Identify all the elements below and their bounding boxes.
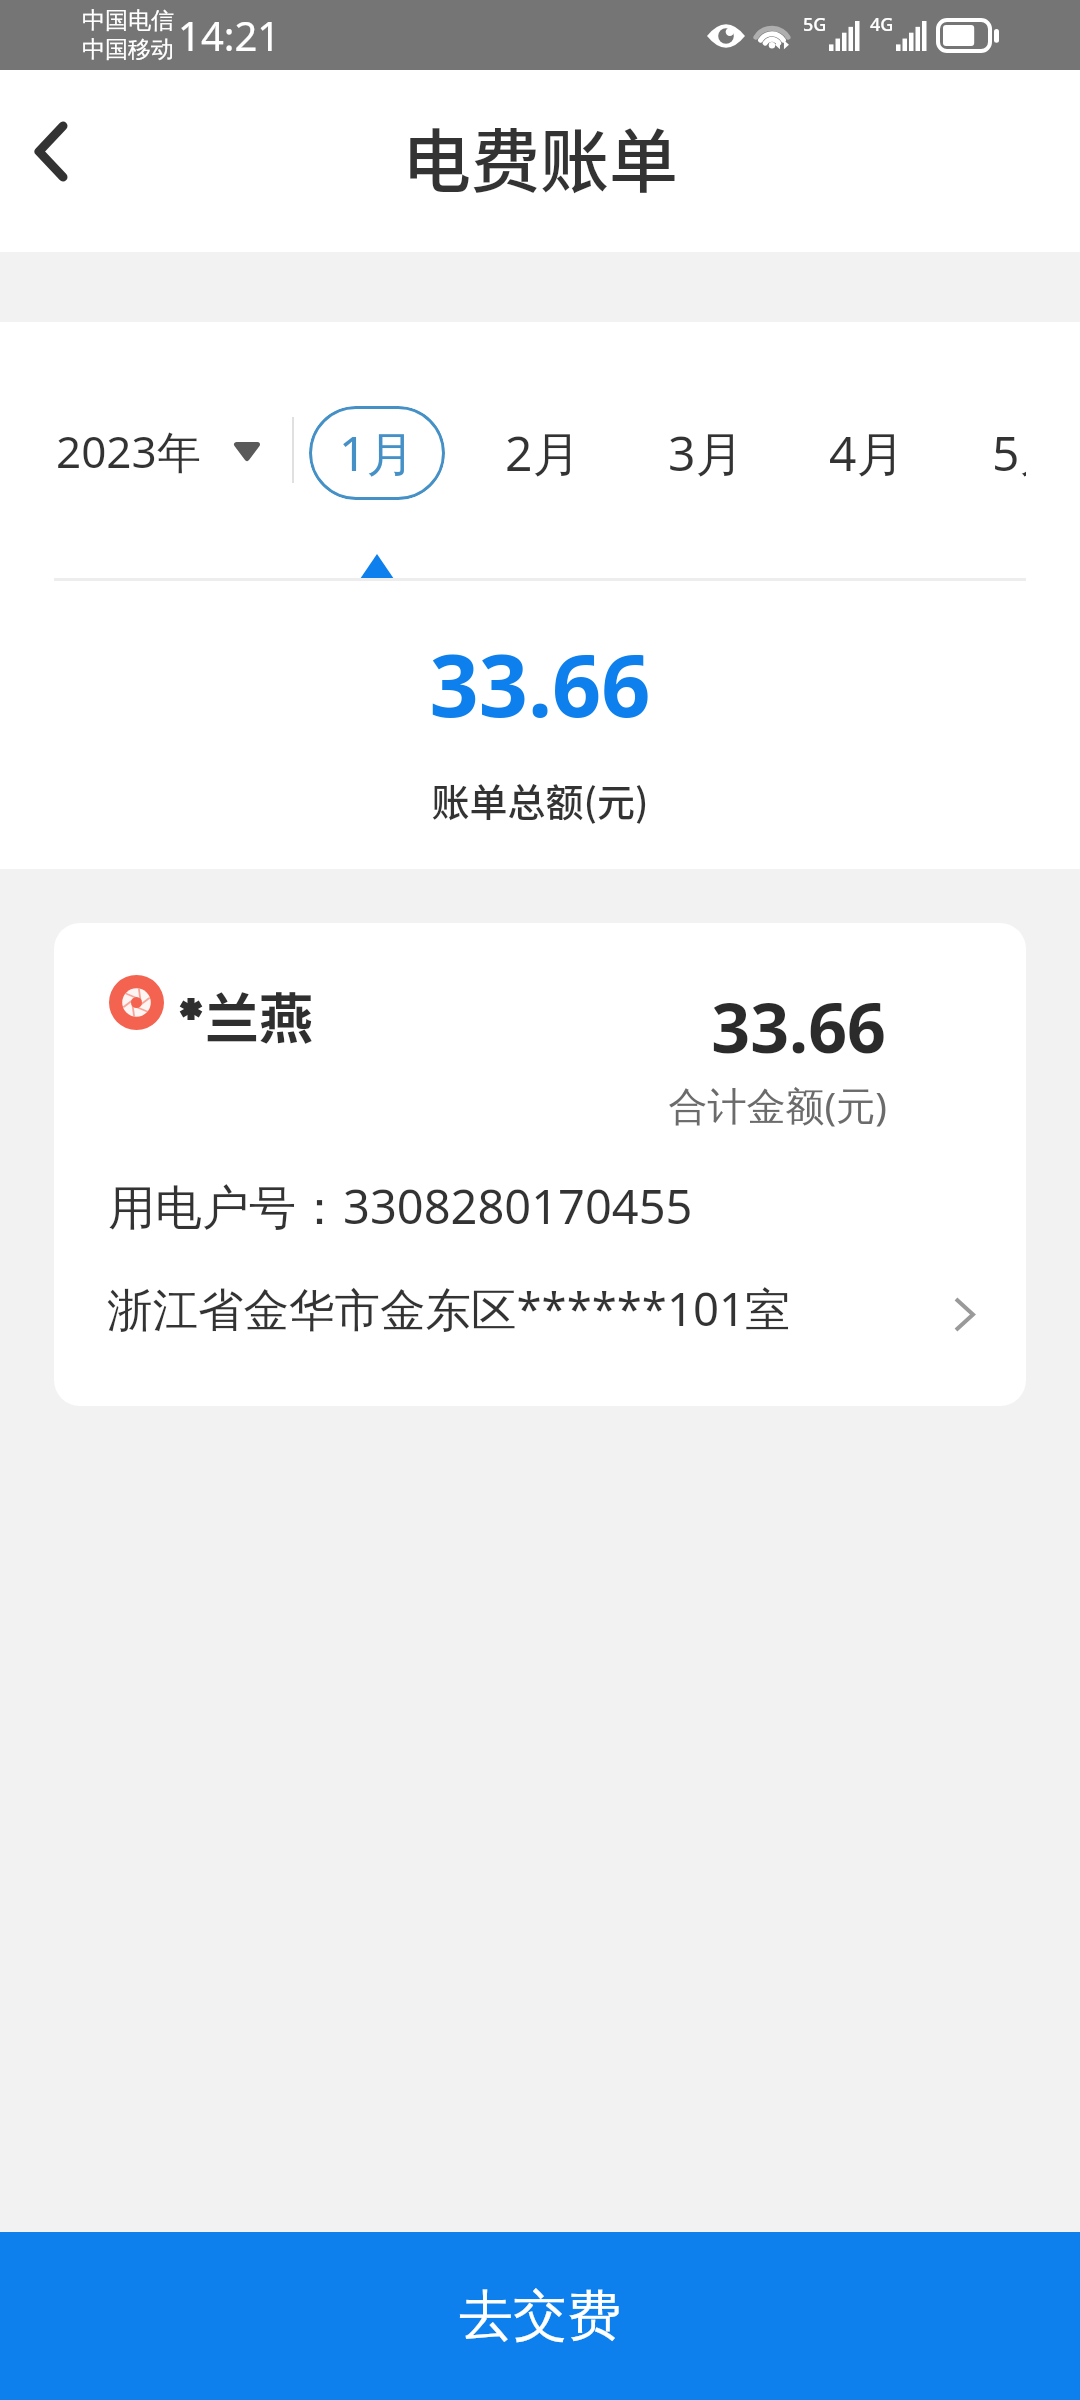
staticText: 电费账单 [0,107,1080,207]
button[interactable]: 1月 [309,406,445,500]
button[interactable]: 3月 [638,406,774,500]
staticText: 用电户号：3308280170455 [108,1174,693,1238]
staticText: 2月 [505,420,581,486]
staticText: 4G [870,12,894,37]
staticText: 中国移动 [82,35,174,64]
staticText: 2023年 [56,421,201,481]
staticText: 33.66 [0,625,1080,742]
button[interactable]: 2月 [475,406,611,500]
button[interactable]: 2023年 [40,398,276,504]
staticText: 5G [803,12,827,37]
button[interactable]: 去交费 [0,2232,1080,2400]
staticText: 中国电信 [82,6,174,35]
staticText: 1月 [339,420,415,486]
staticText: 合计金额(元) [584,1078,887,1131]
button[interactable]: 5月 [962,406,1026,500]
button[interactable]: 兰燕 [54,923,1026,1406]
button[interactable]: Back [0,70,110,190]
staticText: 14:21 [178,8,281,62]
staticText: 5月 [992,420,1026,486]
staticText: 去交费 [459,2282,621,2350]
staticText: 浙江省金华市金东区******101室 [107,1277,791,1339]
staticText: 4月 [829,420,905,486]
staticText: 兰燕 [205,976,313,1054]
staticText: 33.66 [584,980,886,1073]
staticText: 账单总额(元) [0,772,1080,827]
button[interactable]: 4月 [799,406,935,500]
staticText: 3月 [668,420,744,486]
